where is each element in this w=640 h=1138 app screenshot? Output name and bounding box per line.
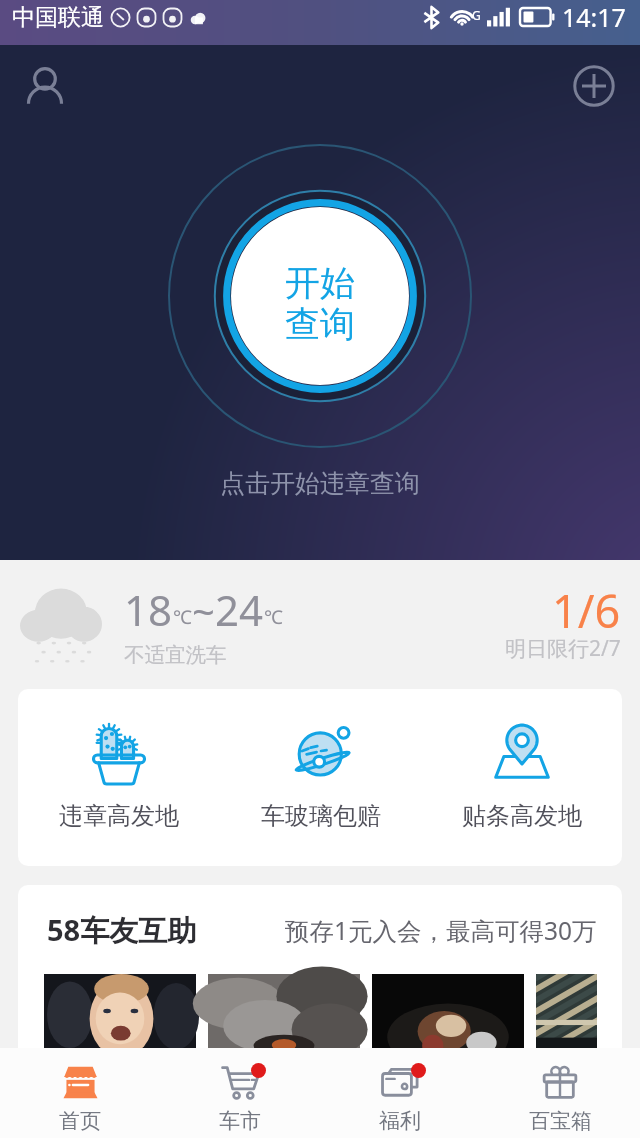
button[interactable]: 车玻璃包赔 — [220, 689, 421, 831]
button[interactable]: 首页 — [0, 1053, 160, 1134]
staticText: 1/6 — [552, 580, 621, 641]
button[interactable]: 百宝箱 — [480, 1053, 640, 1134]
button[interactable]: Add — [566, 58, 622, 114]
staticText: ℃ — [264, 604, 283, 630]
button[interactable]: 福利 — [320, 1053, 480, 1134]
staticText: 百宝箱 — [529, 1108, 592, 1134]
staticText: 中国联通 — [12, 3, 104, 32]
staticText: ~ — [192, 584, 215, 638]
staticText: 贴条高发地 — [462, 801, 582, 831]
staticText: 查询 — [285, 302, 355, 346]
button[interactable]: 车市 — [160, 1053, 320, 1134]
staticText: 不适宜洗车 — [124, 642, 227, 668]
staticText: 违章高发地 — [59, 801, 179, 831]
staticText: 18 — [124, 581, 173, 638]
staticText: 明日限行2/7 — [505, 634, 621, 663]
button[interactable] — [44, 974, 196, 1048]
button[interactable] — [536, 974, 597, 1048]
staticText: 福利 — [379, 1108, 421, 1134]
staticText: ℃ — [173, 604, 192, 630]
button[interactable]: 贴条高发地 — [421, 689, 622, 831]
button[interactable]: Profile — [14, 58, 76, 120]
staticText: 14:17 — [562, 0, 626, 34]
staticText: G — [472, 7, 481, 23]
staticText: 58车友互助 — [47, 910, 197, 950]
button[interactable]: 违章高发地 — [18, 689, 220, 831]
staticText: 24 — [215, 581, 264, 638]
staticText: 点击开始违章查询 — [220, 468, 420, 499]
staticText: 开始 — [285, 261, 355, 305]
button[interactable] — [208, 974, 360, 1048]
staticText: 车玻璃包赔 — [261, 801, 381, 831]
button[interactable]: 开始 — [231, 207, 409, 385]
staticText: 预存1元入会，最高可得30万 — [285, 914, 597, 947]
button[interactable] — [372, 974, 524, 1048]
staticText: 首页 — [59, 1108, 101, 1134]
staticText: 车市 — [219, 1108, 261, 1134]
